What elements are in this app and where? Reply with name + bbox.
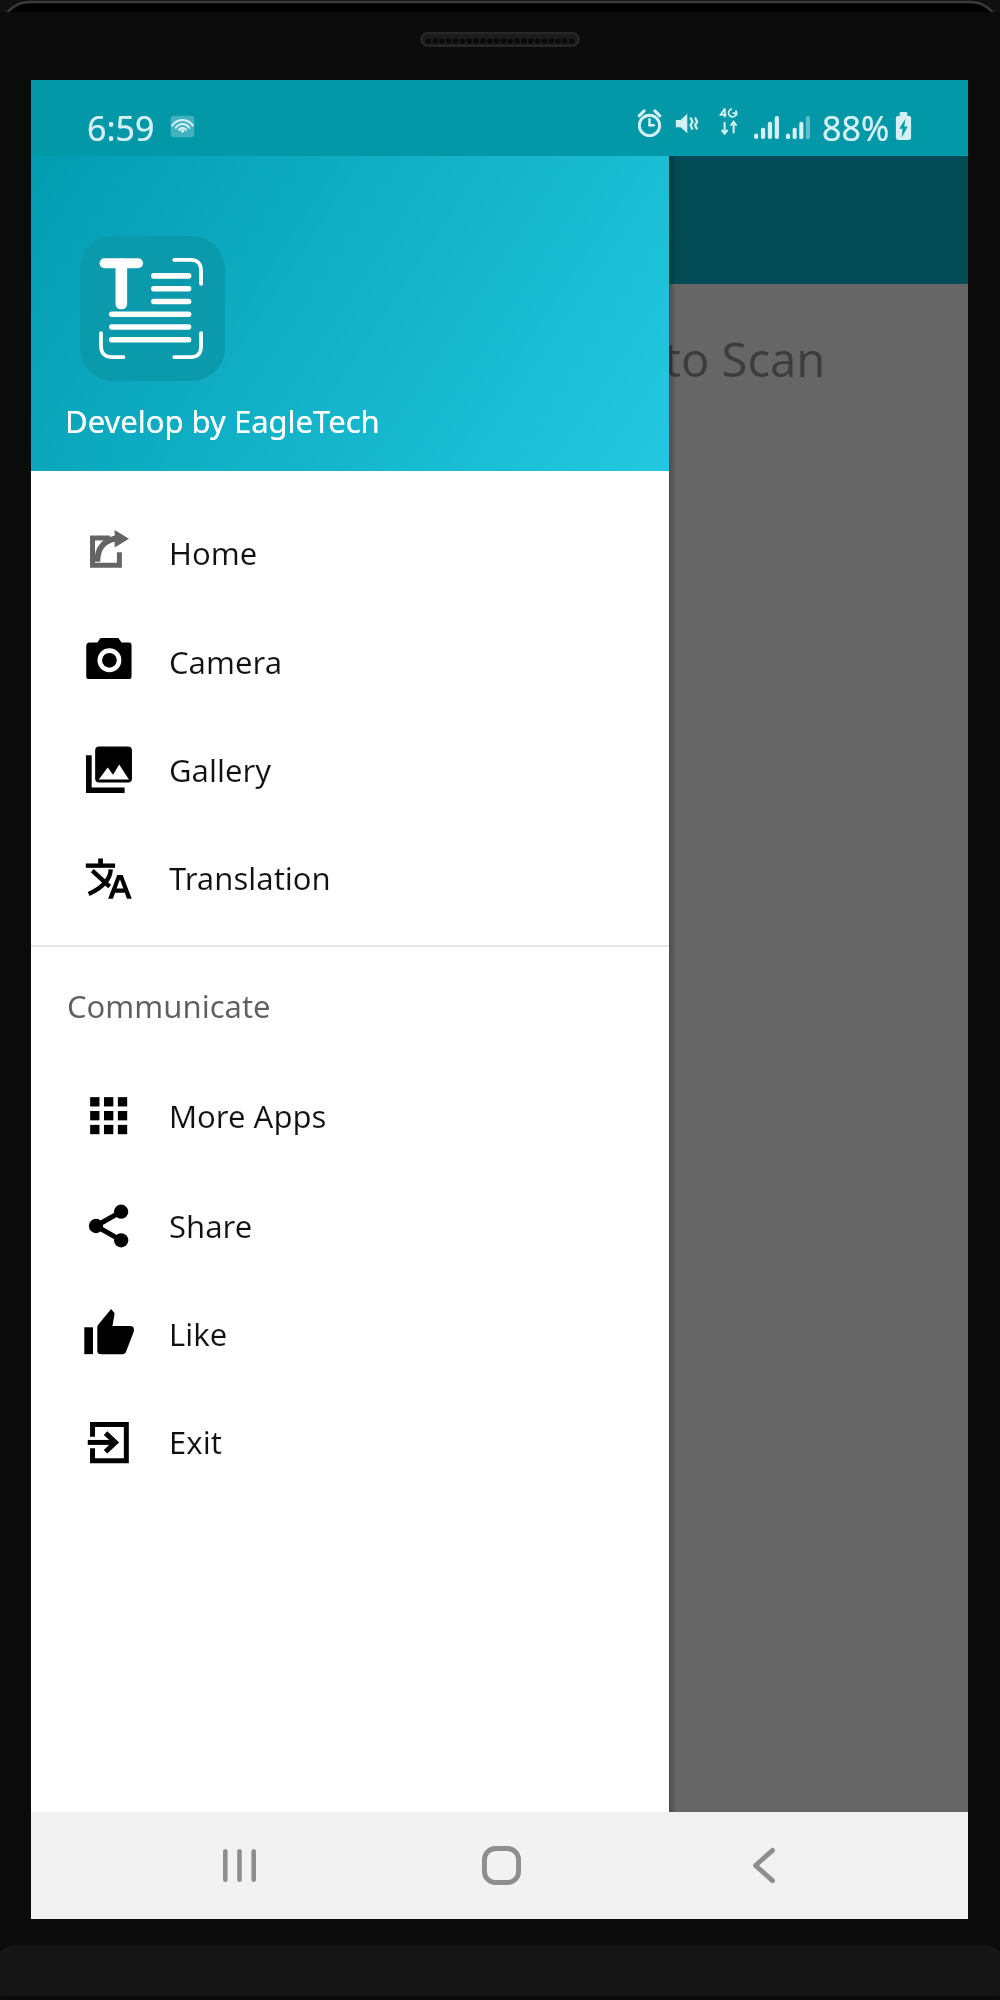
- staticText: Like: [169, 1313, 228, 1355]
- button[interactable]: Back: [708, 1812, 820, 1919]
- staticText: 6:59: [87, 105, 155, 151]
- staticText: Home: [169, 532, 258, 574]
- button[interactable]: Recent apps: [183, 1812, 295, 1919]
- staticText: Share: [169, 1205, 253, 1247]
- button[interactable]: Develop by EagleTech: [31, 156, 669, 471]
- button[interactable]: Exit: [31, 1387, 669, 1496]
- staticText: More Apps: [169, 1095, 327, 1137]
- button[interactable]: Gallery: [31, 715, 669, 824]
- button[interactable]: Home: [445, 1812, 557, 1919]
- staticText: 88%: [822, 105, 890, 151]
- button[interactable]: Like: [31, 1279, 669, 1388]
- button[interactable]: Home: [31, 498, 669, 607]
- staticText: Develop by EagleTech: [65, 400, 380, 442]
- staticText: Communicate: [67, 985, 271, 1027]
- button[interactable]: Share: [31, 1171, 669, 1280]
- button[interactable]: Translation: [31, 823, 669, 932]
- staticText: to Scan: [664, 327, 826, 391]
- staticText: Gallery: [169, 749, 272, 791]
- button[interactable]: More Apps: [31, 1061, 669, 1170]
- staticText: Exit: [169, 1421, 222, 1463]
- staticText: Translation: [169, 857, 331, 899]
- button[interactable]: Camera: [31, 607, 669, 716]
- button[interactable]: Close navigation drawer: [31, 80, 968, 1919]
- staticText: Camera: [169, 641, 283, 683]
